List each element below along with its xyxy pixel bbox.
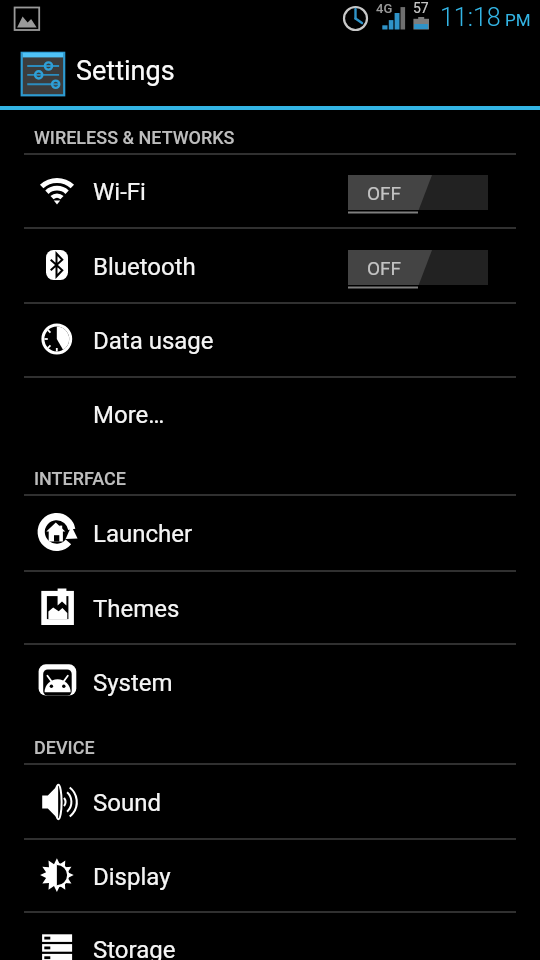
button[interactable]: Storage xyxy=(0,911,540,960)
staticText: Sound xyxy=(93,789,161,817)
staticText: Storage xyxy=(93,936,176,960)
staticText: Data usage xyxy=(93,327,214,355)
staticText: Display xyxy=(93,863,171,891)
staticText: More… xyxy=(93,401,165,429)
button[interactable]: Data usage xyxy=(0,302,540,376)
staticText: WIRELESS & NETWORKS xyxy=(34,127,235,148)
button[interactable]: System xyxy=(0,643,540,719)
staticText: OFF xyxy=(367,257,402,279)
button[interactable]: Settings xyxy=(0,39,540,106)
staticText: Settings xyxy=(76,55,175,87)
staticText: 57 xyxy=(413,0,429,16)
staticText: 4G xyxy=(376,1,393,16)
staticText: Bluetooth xyxy=(93,253,196,281)
button[interactable]: Bluetooth toggle, off xyxy=(348,250,488,288)
staticText: OFF xyxy=(367,182,402,204)
staticText: 11:18 xyxy=(440,3,501,32)
staticText: DEVICE xyxy=(34,737,95,758)
button[interactable]: Wi-Fi xyxy=(0,153,540,227)
button[interactable]: Launcher xyxy=(0,494,540,570)
button[interactable]: Wi-Fi toggle, off xyxy=(348,175,488,213)
staticText: Themes xyxy=(93,595,180,623)
staticText: INTERFACE xyxy=(34,468,126,489)
staticText: System xyxy=(93,669,173,697)
staticText: PM xyxy=(505,10,531,30)
button[interactable]: Bluetooth xyxy=(0,227,540,302)
staticText: Wi-Fi xyxy=(93,178,146,206)
staticText: Launcher xyxy=(93,520,193,548)
button[interactable]: More… xyxy=(0,376,540,450)
button[interactable]: Display xyxy=(0,838,540,911)
button[interactable]: Sound xyxy=(0,763,540,838)
button[interactable]: Themes xyxy=(0,570,540,643)
